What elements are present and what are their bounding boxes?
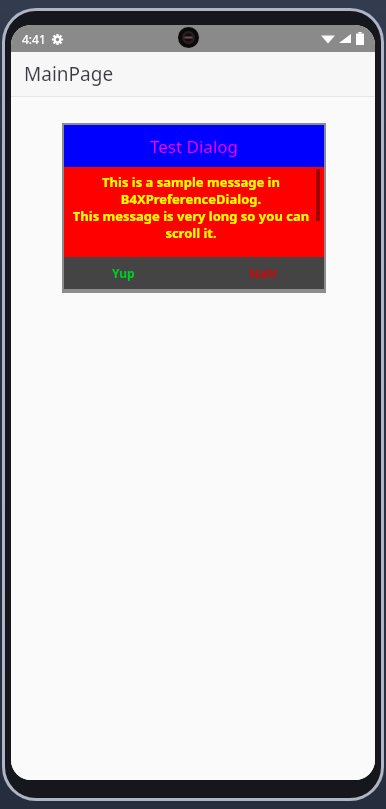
staticText: Nah! xyxy=(249,265,278,281)
staticText: 4:41 xyxy=(22,31,46,47)
staticText: Yup xyxy=(112,265,135,281)
button[interactable]: Yup xyxy=(102,260,145,286)
staticText: MainPage xyxy=(24,61,114,87)
button[interactable]: Nah! xyxy=(239,260,288,286)
staticText: Test Dialog xyxy=(150,135,239,158)
staticText: This is a sample message in B4XPreferenc… xyxy=(72,173,310,242)
